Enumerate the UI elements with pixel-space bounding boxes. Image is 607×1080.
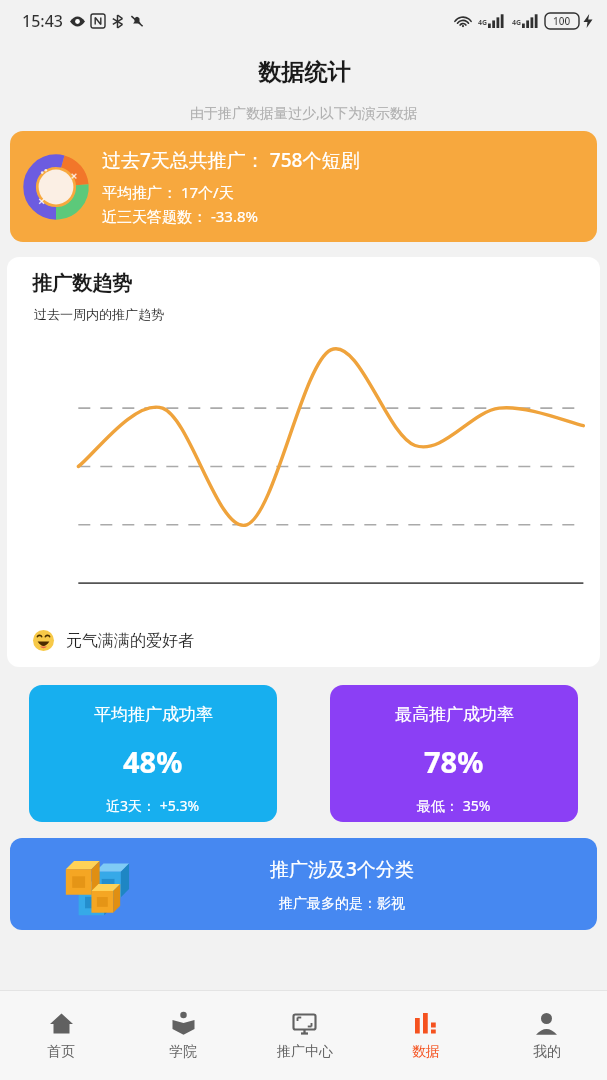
staticText: 由于推广数据量过少,以下为演示数据	[190, 103, 418, 122]
staticText: 数据统计	[258, 58, 350, 87]
staticText: 元气满满的爱好者	[66, 631, 194, 651]
staticText: 学院	[169, 1043, 197, 1061]
staticText: 推广涉及3个分类	[270, 856, 414, 882]
button[interactable]: 首页	[0, 991, 122, 1080]
staticText: 数据	[412, 1043, 440, 1061]
staticText: 近3天： +5.3%	[106, 796, 200, 815]
button[interactable]: 推广数趋势	[7, 257, 600, 667]
staticText: 我的	[533, 1043, 561, 1061]
button[interactable]: 我的	[486, 991, 607, 1080]
staticText: 推广最多的是：影视	[279, 895, 405, 913]
staticText: 平均推广： 17个/天	[102, 182, 234, 202]
staticText: 推广中心	[277, 1043, 333, 1061]
staticText: 最低： 35%	[417, 796, 491, 815]
staticText: 100	[553, 14, 571, 28]
staticText: 平均推广成功率	[94, 704, 213, 725]
staticText: 过去一周内的推广趋势	[34, 306, 164, 322]
button[interactable]: 数据	[365, 991, 486, 1080]
staticText: 4G	[478, 18, 488, 28]
button[interactable]: 学院	[122, 991, 244, 1080]
staticText: 近三天答题数： -33.8%	[102, 206, 258, 226]
button[interactable]: 最高推广成功率	[330, 685, 578, 822]
staticText: 48%	[123, 742, 183, 781]
staticText: 4G	[512, 18, 522, 28]
staticText: 推广数趋势	[32, 271, 132, 296]
staticText: 最高推广成功率	[395, 704, 514, 725]
staticText: 首页	[47, 1043, 75, 1061]
button[interactable]: 推广涉及3个分类	[10, 838, 597, 930]
staticText: 过去7天总共推广： 758个短剧	[102, 147, 360, 173]
staticText: 15:43	[22, 10, 63, 32]
staticText: 78%	[424, 742, 484, 781]
button[interactable]: 过去7天总共推广： 758个短剧	[10, 131, 597, 242]
button[interactable]: 平均推广成功率	[29, 685, 277, 822]
button[interactable]: 推广中心	[244, 991, 365, 1080]
